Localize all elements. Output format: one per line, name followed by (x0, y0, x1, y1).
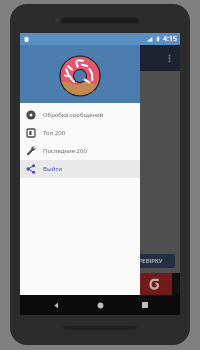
button[interactable]: Recents (136, 296, 154, 314)
staticText: ПЕРЕВІРКУ (131, 257, 163, 265)
button[interactable]: Advertisement (138, 273, 172, 295)
button[interactable]: Последние 200 (20, 142, 140, 160)
staticText: 4:15 (163, 34, 177, 44)
button[interactable]: Back (47, 296, 65, 314)
button[interactable]: ПЕРЕВІРКУ (119, 254, 175, 268)
staticText: Последние 200 (43, 147, 87, 155)
button[interactable]: Обробка сообщений (20, 106, 140, 124)
staticText: Топ 200 (43, 129, 66, 137)
staticText: Обробка сообщений (43, 111, 104, 119)
staticText: Выйти (43, 165, 63, 173)
button[interactable]: Home (91, 296, 109, 314)
button[interactable]: More options (160, 49, 178, 67)
button[interactable]: Выйти (20, 160, 140, 178)
button[interactable]: Топ 200 (20, 124, 140, 142)
